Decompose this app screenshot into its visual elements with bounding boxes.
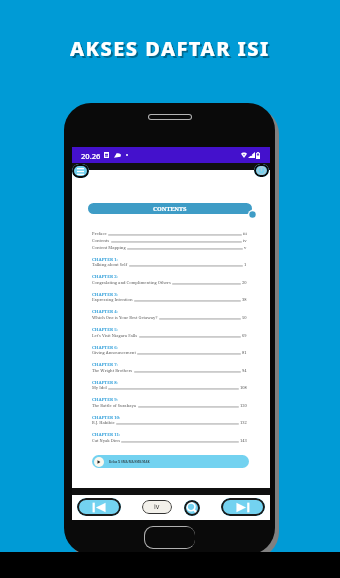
staticText: iv — [154, 502, 160, 512]
staticText: Talking about Self — [92, 262, 128, 268]
button[interactable]: Congralating and Complimenting Others — [92, 280, 247, 286]
staticText: CHAPTER 5: — [92, 326, 118, 332]
staticText: B.J. Habibie — [92, 420, 115, 426]
staticText: 81 — [242, 350, 247, 356]
button[interactable]: The Battle of Surabaya — [92, 403, 247, 409]
button[interactable]: Previous page — [77, 498, 121, 516]
staticText: Let's Visit Niagara Falls — [92, 333, 138, 339]
staticText: 69 — [242, 333, 247, 339]
staticText: 143 — [240, 438, 247, 444]
staticText: Giving Announcement — [92, 350, 136, 356]
button[interactable]: iv — [142, 500, 172, 514]
staticText: 20.26 — [81, 151, 101, 161]
staticText: iv — [243, 238, 247, 244]
staticText: CHAPTER 3: — [92, 291, 118, 297]
button[interactable]: Menu — [72, 164, 89, 178]
button[interactable]: Talking about Self — [92, 262, 247, 268]
staticText: The Battle of Surabaya — [92, 403, 137, 409]
staticText: CHAPTER 1: — [92, 256, 118, 262]
staticText: AKSES DAFTAR ISI — [72, 37, 272, 64]
button[interactable]: Home — [144, 526, 195, 549]
staticText: v — [244, 245, 247, 251]
button[interactable]: Kelas X SMA/MA/SMK/MAK — [92, 455, 249, 468]
button[interactable]: Next page — [221, 498, 265, 516]
button[interactable]: Expressing Intention — [92, 297, 247, 303]
button[interactable]: Rotate screen — [254, 164, 269, 177]
button[interactable]: Preface — [92, 231, 247, 237]
staticText: Preface — [92, 231, 107, 237]
button[interactable]: My Idol — [92, 385, 247, 391]
button[interactable]: B.J. Habibie — [92, 420, 247, 426]
staticText: 20 — [242, 280, 247, 286]
staticText: CHAPTER 9: — [92, 396, 118, 402]
staticText: Congralating and Complimenting Others — [92, 280, 171, 286]
button[interactable]: Let's Visit Niagara Falls — [92, 333, 247, 339]
staticText: CHAPTER 4: — [92, 308, 118, 314]
button[interactable]: The Wright Brothers — [92, 368, 247, 374]
button[interactable]: Search — [184, 500, 200, 516]
staticText: 94 — [242, 368, 247, 374]
staticText: CHAPTER 2: — [92, 273, 118, 279]
staticText: 1 — [244, 262, 247, 268]
staticText: CHAPTER 10: — [92, 414, 121, 420]
staticText: iii — [243, 231, 247, 237]
staticText: The Wright Brothers — [92, 368, 133, 374]
staticText: Kelas X SMA/MA/SMK/MAK — [109, 460, 150, 464]
staticText: CHAPTER 7: — [92, 361, 118, 367]
staticText: CHAPTER 6: — [92, 344, 118, 350]
button[interactable]: Contents — [92, 238, 247, 244]
staticText: 108 — [240, 385, 247, 391]
staticText: 132 — [240, 420, 247, 426]
staticText: Which One is Your Best Getaway? — [92, 315, 158, 321]
button[interactable]: Which One is Your Best Getaway? — [92, 315, 247, 321]
button[interactable]: Giving Announcement — [92, 350, 247, 356]
staticText: 38 — [242, 297, 247, 303]
staticText: My Idol — [92, 385, 107, 391]
staticText: Content Mapping — [92, 245, 126, 251]
button[interactable]: Content Mapping — [92, 245, 247, 251]
staticText: CHAPTER 11: — [92, 431, 121, 437]
staticText: CHAPTER 8: — [92, 379, 118, 385]
staticText: Cut Nyak Dien — [92, 438, 120, 444]
staticText: Expressing Intention — [92, 297, 133, 303]
staticText: 120 — [240, 403, 247, 409]
button[interactable]: Cut Nyak Dien — [92, 438, 247, 444]
staticText: CONTENTS — [153, 205, 187, 213]
staticText: 50 — [242, 315, 247, 321]
staticText: AKSES DAFTAR ISI — [70, 35, 270, 62]
staticText: Contents — [92, 238, 110, 244]
